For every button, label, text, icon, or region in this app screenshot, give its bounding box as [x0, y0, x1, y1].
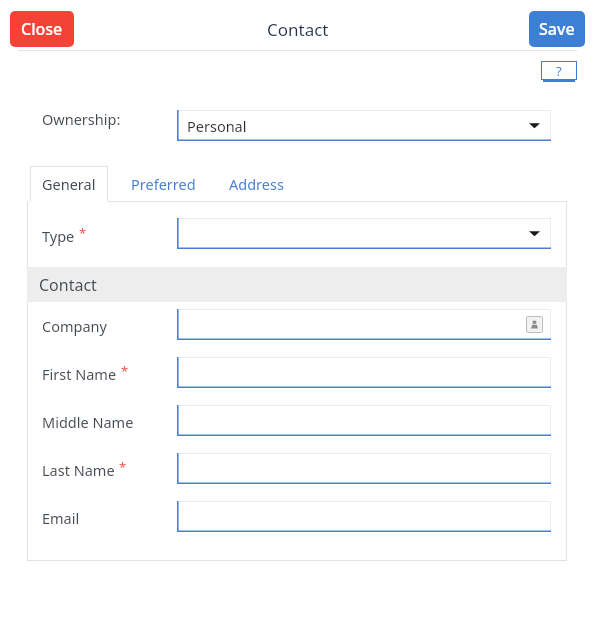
button[interactable]: Save	[529, 11, 585, 47]
button[interactable]	[177, 357, 551, 388]
staticText: Last Name	[42, 460, 115, 480]
staticText: ?	[556, 62, 562, 80]
button[interactable]: Preferred	[118, 166, 208, 201]
button[interactable]: Help	[541, 61, 577, 83]
button[interactable]: Close	[10, 11, 74, 47]
staticText: Ownership:	[42, 109, 121, 129]
button[interactable]	[177, 453, 551, 484]
staticText: *	[121, 362, 129, 380]
button[interactable]: Select contact	[177, 309, 551, 340]
button[interactable]	[177, 405, 551, 436]
staticText: General	[42, 174, 96, 194]
staticText: Contact	[267, 18, 329, 41]
staticText: Email	[42, 508, 80, 528]
staticText: Contact	[39, 274, 97, 296]
button[interactable]: Address	[212, 166, 300, 201]
staticText: Company	[42, 316, 107, 336]
staticText: Save	[539, 18, 575, 40]
staticText: Type	[42, 226, 75, 246]
button[interactable]	[177, 218, 551, 249]
staticText: Middle Name	[42, 412, 134, 432]
staticText: Address	[229, 174, 284, 194]
button[interactable]: Select contact	[526, 316, 543, 333]
staticText: Close	[21, 18, 63, 40]
staticText: First Name	[42, 364, 117, 384]
button[interactable]	[177, 501, 551, 532]
button[interactable]: General	[30, 166, 108, 201]
button[interactable]: Personal	[177, 110, 551, 141]
staticText: Personal	[187, 116, 247, 136]
staticText: Preferred	[131, 174, 196, 194]
staticText: *	[79, 224, 87, 242]
staticText: *	[119, 458, 127, 476]
